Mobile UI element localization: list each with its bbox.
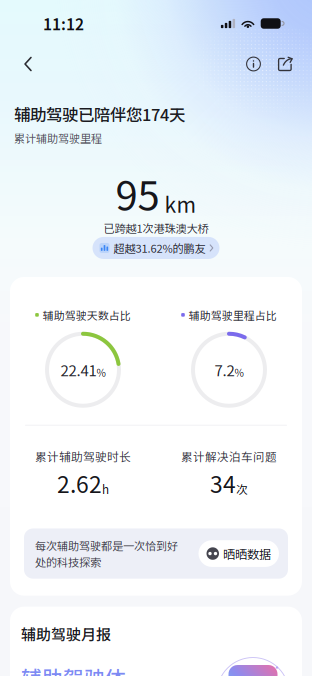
staticText: 累计辅助驾驶里程: [14, 130, 102, 146]
staticText: 辅助驾驶月报: [21, 623, 111, 645]
staticText: 辅助驾驶已陪伴您174天: [14, 102, 185, 126]
staticText: 2.62: [57, 466, 102, 499]
staticText: 95: [115, 164, 159, 222]
button[interactable]: Back: [14, 54, 42, 74]
button[interactable]: Info: [237, 54, 270, 74]
staticText: 次: [236, 481, 248, 497]
staticText: 已跨越1次港珠澳大桥: [103, 220, 208, 236]
staticText: h: [102, 481, 109, 497]
staticText: 累计辅助驾驶时长: [35, 448, 131, 464]
staticText: 辅助驾驶体: [21, 662, 126, 676]
staticText: km: [164, 188, 196, 219]
button[interactable]: 超越31.62%的鹏友: [92, 237, 219, 259]
staticText: 22.41: [60, 359, 96, 381]
button[interactable]: 晒晒数据: [198, 540, 279, 567]
staticText: %: [96, 365, 105, 380]
staticText: 超越31.62%的鹏友: [113, 240, 205, 256]
button[interactable]: Share: [270, 54, 300, 74]
staticText: 34: [210, 466, 236, 499]
staticText: 辅助驾驶天数占比: [43, 307, 131, 323]
staticText: 7.2: [214, 359, 234, 381]
staticText: 每次辅助驾驶都是一次恰到好 处的科技探索: [35, 537, 178, 570]
staticText: 累计解决泊车问题: [181, 448, 277, 464]
staticText: 晒晒数据: [223, 545, 271, 562]
staticText: %: [234, 365, 243, 380]
staticText: 11:12: [43, 12, 84, 35]
staticText: 辅助驾驶里程占比: [189, 307, 277, 323]
